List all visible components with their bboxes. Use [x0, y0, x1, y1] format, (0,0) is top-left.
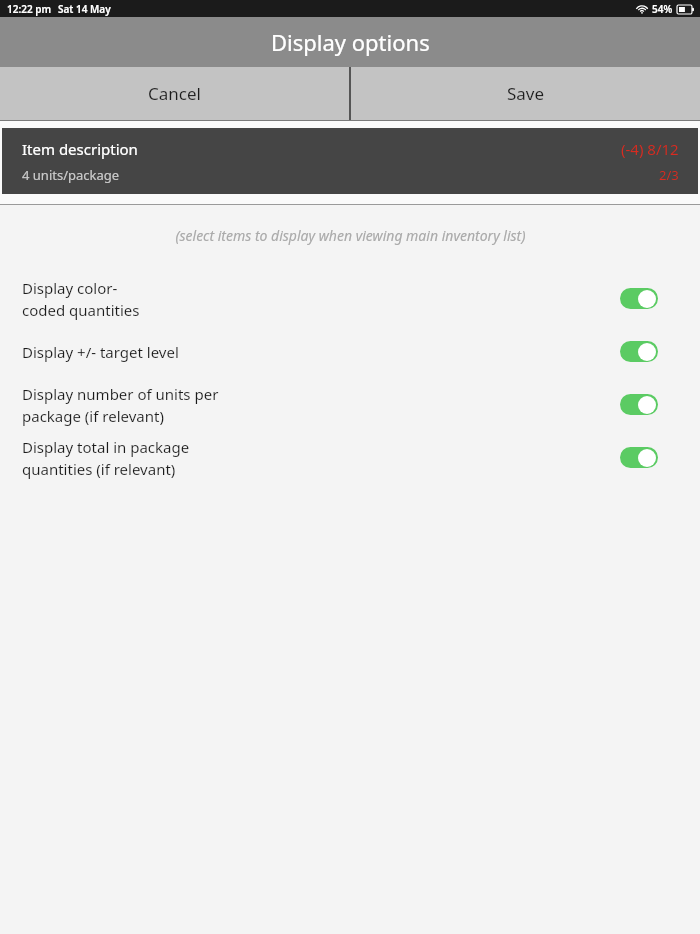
button[interactable]: Toggle Display total in package quantiti…: [620, 447, 658, 468]
staticText: Cancel: [148, 82, 201, 105]
staticText: quantities (if relevant): [22, 459, 176, 479]
button[interactable]: Toggle Display number of units per packa…: [620, 394, 658, 415]
staticText: Display +/- target level: [22, 342, 179, 362]
staticText: (select items to display when viewing ma…: [175, 226, 526, 245]
staticText: (-4) 8/12: [621, 139, 679, 159]
button[interactable]: Display color-: [0, 272, 700, 325]
button[interactable]: Display total in package: [0, 431, 700, 484]
staticText: 2/3: [659, 166, 679, 184]
button[interactable]: Display +/- target level: [0, 325, 700, 378]
button[interactable]: Toggle Display +/- target level: [620, 341, 658, 362]
button[interactable]: Save: [351, 67, 700, 120]
staticText: 12:22 pm: [7, 2, 52, 16]
staticText: 4 units/package: [22, 166, 120, 184]
staticText: package (if relevant): [22, 406, 164, 426]
staticText: Display total in package: [22, 437, 190, 457]
staticText: 54%: [652, 2, 673, 16]
staticText: Display color-: [22, 278, 118, 298]
button[interactable]: Display number of units per: [0, 378, 700, 431]
staticText: Save: [507, 82, 545, 105]
staticText: Sat 14 May: [58, 2, 111, 16]
staticText: coded quantities: [22, 300, 140, 320]
staticText: Item description: [22, 139, 138, 159]
button[interactable]: Item description: [2, 128, 698, 194]
button[interactable]: Cancel: [0, 67, 349, 120]
staticText: Display options: [271, 27, 430, 57]
button[interactable]: Toggle Display color- coded quantities: [620, 288, 658, 309]
staticText: Display number of units per: [22, 384, 219, 404]
